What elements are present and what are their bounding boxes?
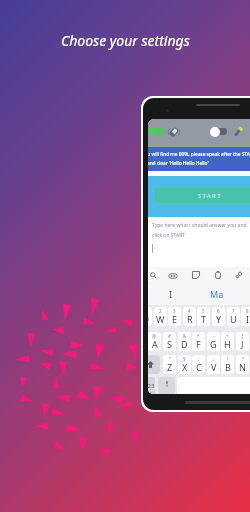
staticText: ; [213,356,215,362]
button[interactable]: ( [236,332,249,351]
staticText: * [197,333,200,339]
button[interactable]: Connection status [155,127,164,136]
other: Stickers [192,271,200,279]
staticText: 3 [173,308,176,314]
staticText: rt and clear 'Hello Hello Hello' [148,160,209,167]
staticText: J [241,338,244,350]
staticText: ? [242,356,244,362]
staticText: D [181,338,188,350]
button[interactable]: + [221,332,234,351]
staticText: ( [242,333,244,339]
button[interactable]: ? [236,355,249,374]
button[interactable]: 4 [183,307,196,326]
button[interactable]: Voice input [158,377,175,394]
staticText: - [213,333,215,339]
staticText: I [246,313,250,325]
staticText: Ma [210,288,224,300]
button[interactable]: ! [221,355,234,374]
button[interactable]: & [178,332,191,351]
button[interactable]: 7 [227,307,240,326]
button[interactable]: ?23 [148,377,155,394]
button[interactable]: I [164,287,177,301]
staticText: : [198,356,200,362]
button[interactable]: Auto rotate [168,126,180,138]
button[interactable]: " [163,355,176,374]
staticText: H [224,338,231,350]
button[interactable]: * [192,332,205,351]
staticText: X [182,361,188,373]
button[interactable]: Shift [148,355,160,374]
staticText: 2 [159,308,162,314]
staticText: B [225,361,231,373]
staticText: V [211,361,217,373]
staticText: U [230,313,237,325]
button[interactable]: : [192,355,205,374]
staticText: + [226,333,229,339]
button[interactable]: - [207,332,220,351]
staticText: Choose your settings [61,31,190,50]
staticText: # [168,333,171,339]
staticText: $ [183,356,186,362]
staticText: G [210,338,217,350]
button[interactable]: Toggle [210,127,220,137]
staticText: C [196,361,202,373]
other: Emoji [169,272,177,280]
staticText: T [201,313,207,325]
staticText: ?23 [148,382,155,390]
staticText: click on START [152,232,186,239]
staticText: " [169,356,171,362]
button[interactable]: Search [148,269,157,281]
staticText: 8 [246,308,249,314]
staticText: Q [148,313,150,325]
button[interactable]: START [155,188,250,203]
button[interactable]: $ [178,355,191,374]
staticText: F [196,338,201,350]
staticText: R [187,313,193,325]
staticText: you will find me 80%, please speak after… [148,151,250,158]
staticText: N [239,361,246,373]
staticText: 6 [217,308,220,314]
staticText: A [152,338,158,350]
other: Clipboard [214,271,222,279]
button[interactable]: 5 [197,307,210,326]
button[interactable]: @ [148,332,161,351]
staticText: Y [216,313,222,325]
staticText: I [169,288,173,300]
staticText: START [198,192,222,200]
staticText: W [156,313,165,325]
button[interactable]: 3 [168,307,181,326]
button[interactable]: 1 [148,307,152,326]
staticText: E [172,313,178,325]
button[interactable]: Flashlight [232,125,245,138]
staticText: 4 [188,308,191,314]
other: Settings [235,271,243,279]
button[interactable]: 6 [212,307,225,326]
staticText: 7 [232,308,235,314]
button[interactable]: # [163,332,176,351]
button[interactable]: ; [207,355,220,374]
staticText: 5 [202,308,205,314]
staticText: S [167,338,172,350]
staticText: Type here what i should answer you and [152,222,247,229]
staticText: & [183,333,187,339]
staticText: ! [227,356,229,362]
staticText: @ [152,333,157,339]
button[interactable]: Ma [208,287,225,301]
button[interactable]: 2 [154,307,167,326]
staticText: Z [167,361,173,373]
button[interactable]: 8 [241,307,250,326]
